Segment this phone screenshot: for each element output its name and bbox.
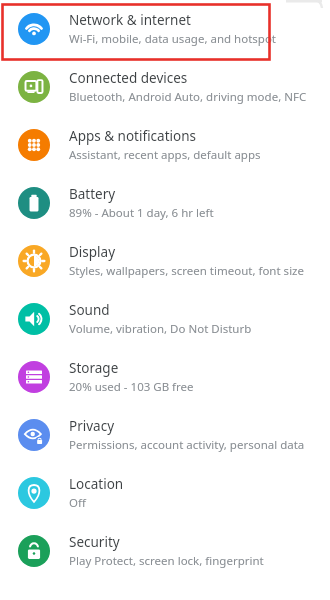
- staticText: Display: [69, 243, 116, 261]
- button[interactable]: Display: [0, 232, 330, 290]
- staticText: Apps & notifications: [69, 127, 196, 145]
- button[interactable]: Security: [0, 522, 330, 580]
- staticText: Storage: [69, 359, 119, 377]
- button[interactable]: Battery: [0, 174, 330, 232]
- staticText: Off: [69, 495, 86, 511]
- staticText: Sound: [69, 301, 110, 319]
- button[interactable]: Network & internet: [0, 0, 330, 58]
- staticText: Permissions, account activity, personal …: [69, 437, 305, 453]
- staticText: Network & internet: [69, 11, 191, 29]
- button[interactable]: Storage: [0, 348, 330, 406]
- button[interactable]: Privacy: [0, 406, 330, 464]
- staticText: Security: [69, 533, 120, 551]
- staticText: Connected devices: [69, 69, 188, 87]
- button[interactable]: Apps & notifications: [0, 116, 330, 174]
- staticText: Styles, wallpapers, screen timeout, font…: [69, 263, 304, 279]
- staticText: 89% - About 1 day, 6 hr left: [69, 205, 214, 221]
- staticText: Battery: [69, 185, 116, 203]
- staticText: 20% used - 103 GB free: [69, 379, 194, 395]
- staticText: Location: [69, 475, 124, 493]
- staticText: Volume, vibration, Do Not Disturb: [69, 321, 252, 337]
- button[interactable]: Sound: [0, 290, 330, 348]
- staticText: Play Protect, screen lock, fingerprint: [69, 553, 264, 569]
- staticText: Wi-Fi, mobile, data usage, and hotspot: [69, 31, 276, 47]
- staticText: Bluetooth, Android Auto, driving mode, N…: [69, 89, 307, 105]
- staticText: Privacy: [69, 417, 115, 435]
- staticText: Assistant, recent apps, default apps: [69, 147, 261, 163]
- button[interactable]: Connected devices: [0, 58, 330, 116]
- button[interactable]: Location: [0, 464, 330, 522]
